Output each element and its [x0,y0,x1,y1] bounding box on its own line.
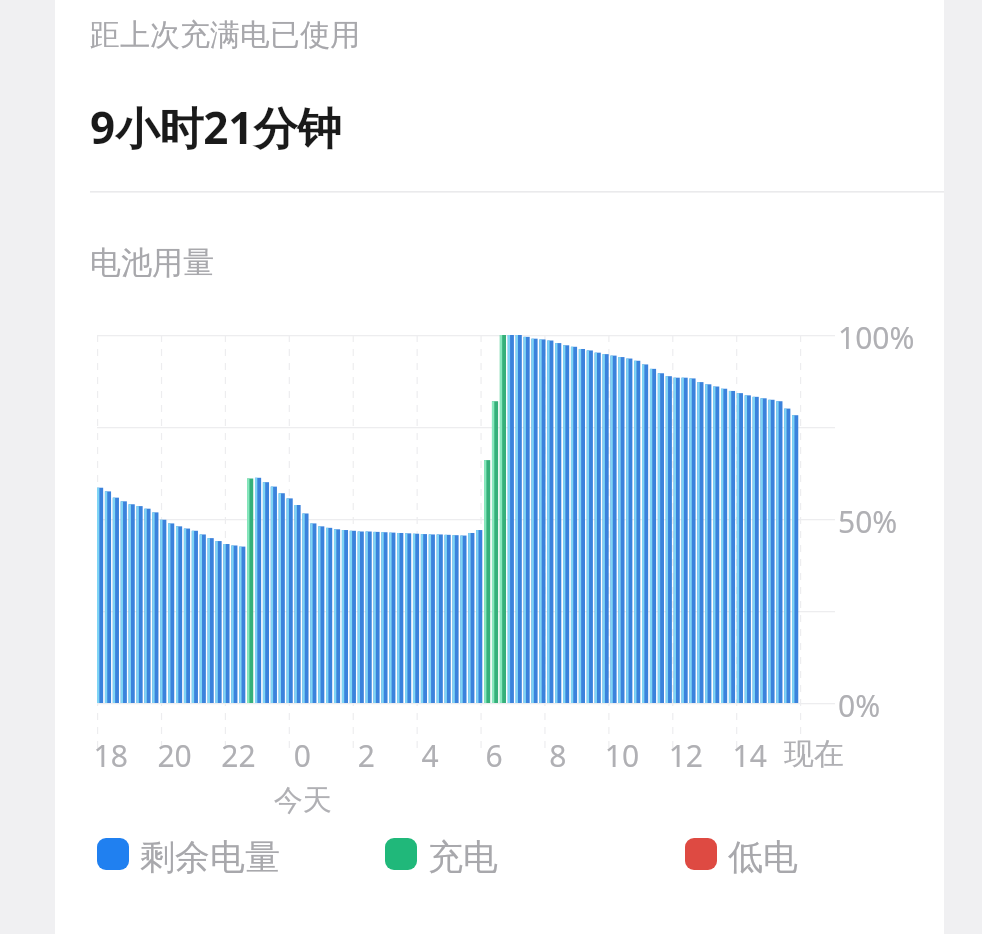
button[interactable]: Battery usage chart [0,0,982,934]
